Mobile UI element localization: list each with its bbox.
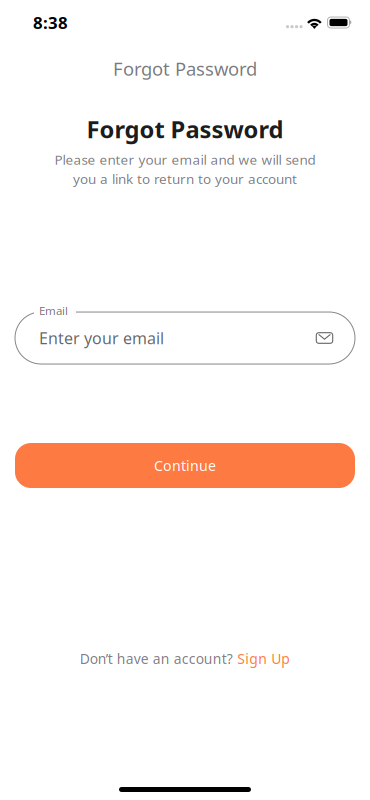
- staticText: Sign Up: [237, 649, 290, 668]
- staticText: Enter your email: [39, 327, 164, 349]
- staticText: Continue: [154, 456, 216, 475]
- button[interactable]: Don’t have an account?: [80, 649, 290, 668]
- staticText: Don’t have an account?: [80, 649, 233, 668]
- staticText: Forgot Password: [86, 113, 283, 145]
- staticText: you a link to return to your account: [73, 170, 297, 188]
- staticText: Please enter your email and we will send: [54, 150, 315, 169]
- staticText: 8:38: [33, 11, 68, 34]
- staticText: Forgot Password: [113, 56, 257, 81]
- staticText: Email: [39, 303, 68, 318]
- button[interactable]: Continue: [15, 443, 355, 488]
- button[interactable]: Enter your email: [15, 304, 355, 364]
